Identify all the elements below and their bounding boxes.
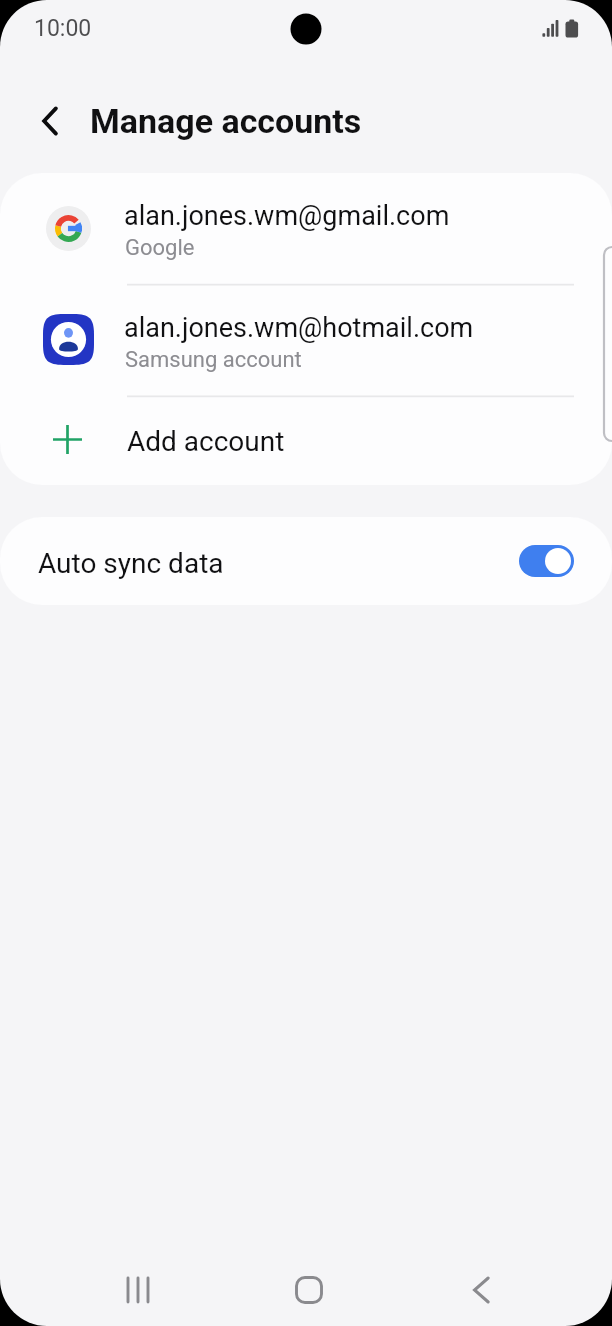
button[interactable]: Back	[451, 1260, 511, 1320]
button[interactable]: Home	[279, 1260, 339, 1320]
staticText: 10:00	[34, 15, 92, 42]
staticText: Add account	[127, 425, 285, 458]
button[interactable]: Auto sync data, on	[519, 545, 574, 577]
button[interactable]: Auto sync data	[0, 517, 612, 605]
button[interactable]: alan.jones.wm@hotmail.com	[0, 284, 612, 396]
staticText: alan.jones.wm@gmail.com	[124, 200, 450, 232]
staticText: alan.jones.wm@hotmail.com	[124, 312, 474, 344]
button[interactable]: Recent apps	[108, 1260, 168, 1320]
staticText: Samsung account	[125, 347, 302, 373]
button[interactable]: Back	[26, 97, 74, 145]
button[interactable]: Add account	[0, 396, 612, 485]
staticText: Google	[125, 235, 195, 261]
staticText: Auto sync data	[38, 547, 224, 580]
button[interactable]: alan.jones.wm@gmail.com	[0, 173, 612, 284]
staticText: Manage accounts	[90, 101, 362, 141]
